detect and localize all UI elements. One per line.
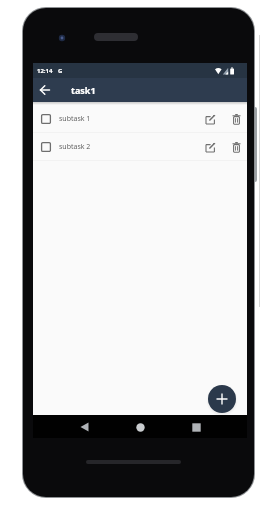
button[interactable]: subtask 1 bbox=[33, 105, 247, 133]
staticText: G bbox=[58, 67, 63, 75]
button[interactable]: subtask 2 bbox=[33, 133, 247, 161]
button[interactable] bbox=[202, 139, 218, 155]
button[interactable] bbox=[230, 113, 242, 125]
button[interactable] bbox=[230, 141, 242, 153]
staticText: 12:14 bbox=[37, 67, 53, 75]
button[interactable] bbox=[37, 110, 55, 128]
button[interactable] bbox=[186, 417, 206, 437]
button[interactable] bbox=[37, 138, 55, 156]
staticText: task1 bbox=[71, 84, 96, 96]
button[interactable] bbox=[130, 417, 150, 437]
staticText: subtask 2 bbox=[59, 142, 91, 152]
button[interactable] bbox=[74, 417, 94, 437]
button[interactable] bbox=[33, 78, 57, 102]
button[interactable] bbox=[202, 111, 218, 127]
button[interactable] bbox=[208, 385, 236, 413]
staticText: subtask 1 bbox=[59, 114, 91, 124]
